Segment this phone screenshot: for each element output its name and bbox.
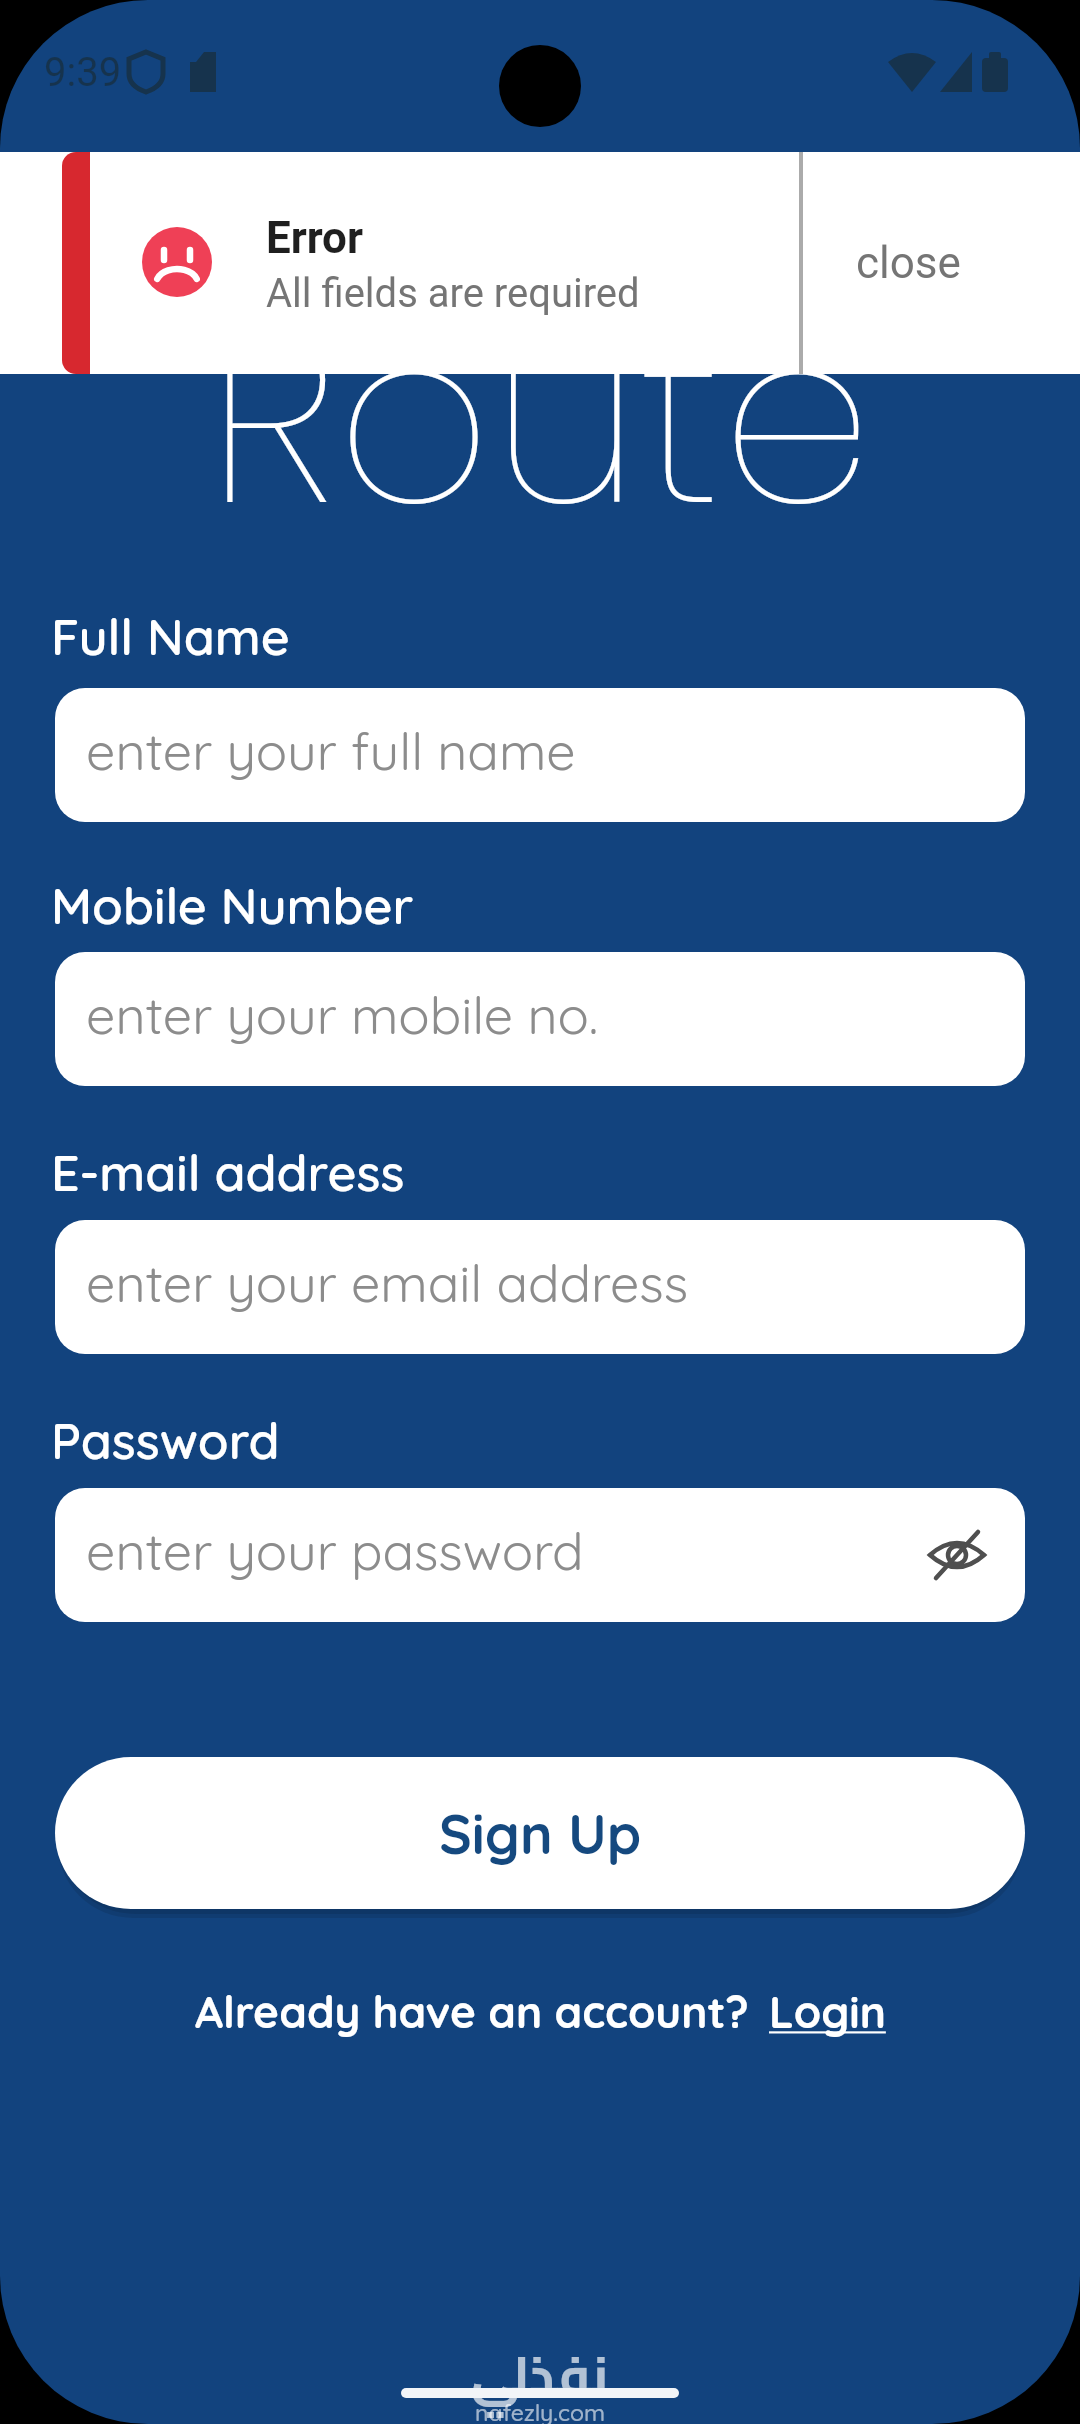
button[interactable] [927,1525,987,1585]
button[interactable]: close [800,152,1016,374]
staticText: Route [207,249,873,586]
button[interactable]: enter your full name [55,688,1025,822]
staticText: enter your password [86,1518,584,1583]
button[interactable]: enter your password [55,1488,1025,1622]
button[interactable]: enter your mobile no. [55,952,1025,1086]
staticText: close [856,237,961,289]
staticText: Error [266,212,364,264]
staticText: نفذلي [471,2326,609,2423]
staticText: E-mail address [51,1141,405,1204]
button[interactable]: enter your email address [55,1220,1025,1354]
staticText: enter your full name [86,718,576,783]
staticText: Full Name [51,605,290,668]
button[interactable]: Login [769,1984,886,2039]
staticText: nafezly.com [475,2398,606,2424]
staticText: Sign Up [439,1799,642,1868]
staticText: 9:39 [44,49,122,96]
button[interactable]: Sign Up [55,1757,1025,1909]
staticText: Mobile Number [51,874,414,937]
staticText: Password [51,1409,280,1472]
staticText: enter your email address [86,1250,689,1315]
staticText: All fields are required [266,270,640,317]
staticText: Already have an account? [195,1984,749,2039]
staticText: enter your mobile no. [86,982,599,1047]
